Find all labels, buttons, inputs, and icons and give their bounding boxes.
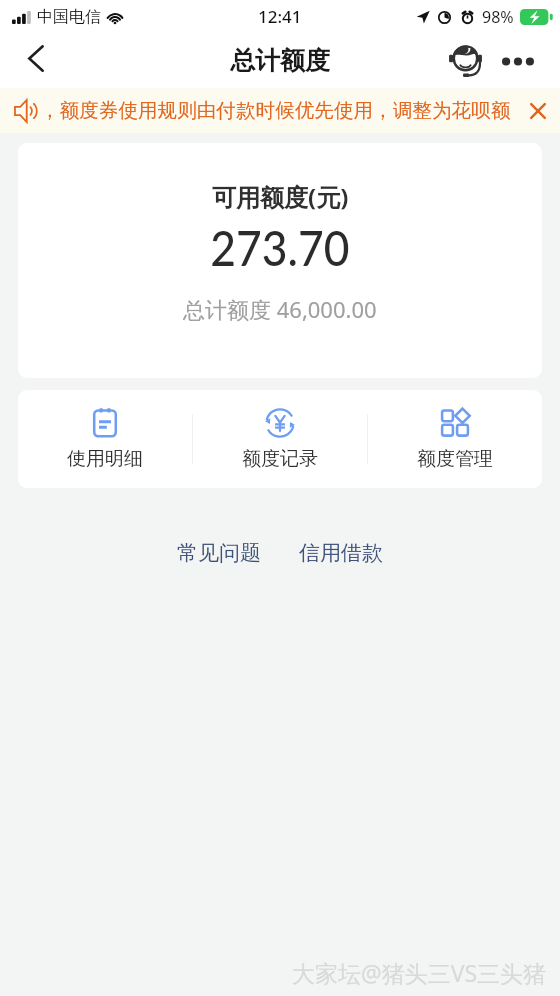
button[interactable]: Back — [10, 33, 62, 84]
staticText: 常见问题 — [177, 540, 261, 566]
staticText: ，额度券使用规则由付款时候优先使用，调整为花呗额 — [40, 98, 511, 123]
button[interactable]: 使用明细 — [18, 390, 192, 488]
button[interactable]: Customer service — [443, 39, 487, 83]
button[interactable]: 额度记录 — [193, 390, 367, 488]
button[interactable]: 信用借款 — [295, 536, 387, 570]
button[interactable]: 常见问题 — [173, 536, 265, 570]
button[interactable]: ，额度券使用规则由付款时候优先使用，调整为花呗额 — [0, 88, 560, 133]
staticText: 可用额度(元) — [212, 180, 349, 213]
staticText: 额度记录 — [242, 447, 318, 471]
staticText: 273.70 — [210, 218, 350, 277]
staticText: 总计额度 — [230, 45, 330, 76]
button[interactable]: More options — [496, 39, 540, 83]
button[interactable]: 可用额度(元) — [18, 143, 542, 378]
staticText: 使用明细 — [67, 447, 143, 471]
staticText: 信用借款 — [299, 540, 383, 566]
button[interactable]: Close — [517, 90, 559, 132]
staticText: 98% — [482, 6, 514, 28]
staticText: 总计额度 46,000.00 — [183, 294, 377, 324]
button[interactable]: 额度管理 — [368, 390, 542, 488]
staticText: 12:41 — [258, 5, 302, 28]
staticText: 大家坛@猪头三VS三头猪 — [292, 957, 547, 988]
staticText: 额度管理 — [417, 447, 493, 471]
staticText: 中国电信 — [37, 7, 101, 27]
